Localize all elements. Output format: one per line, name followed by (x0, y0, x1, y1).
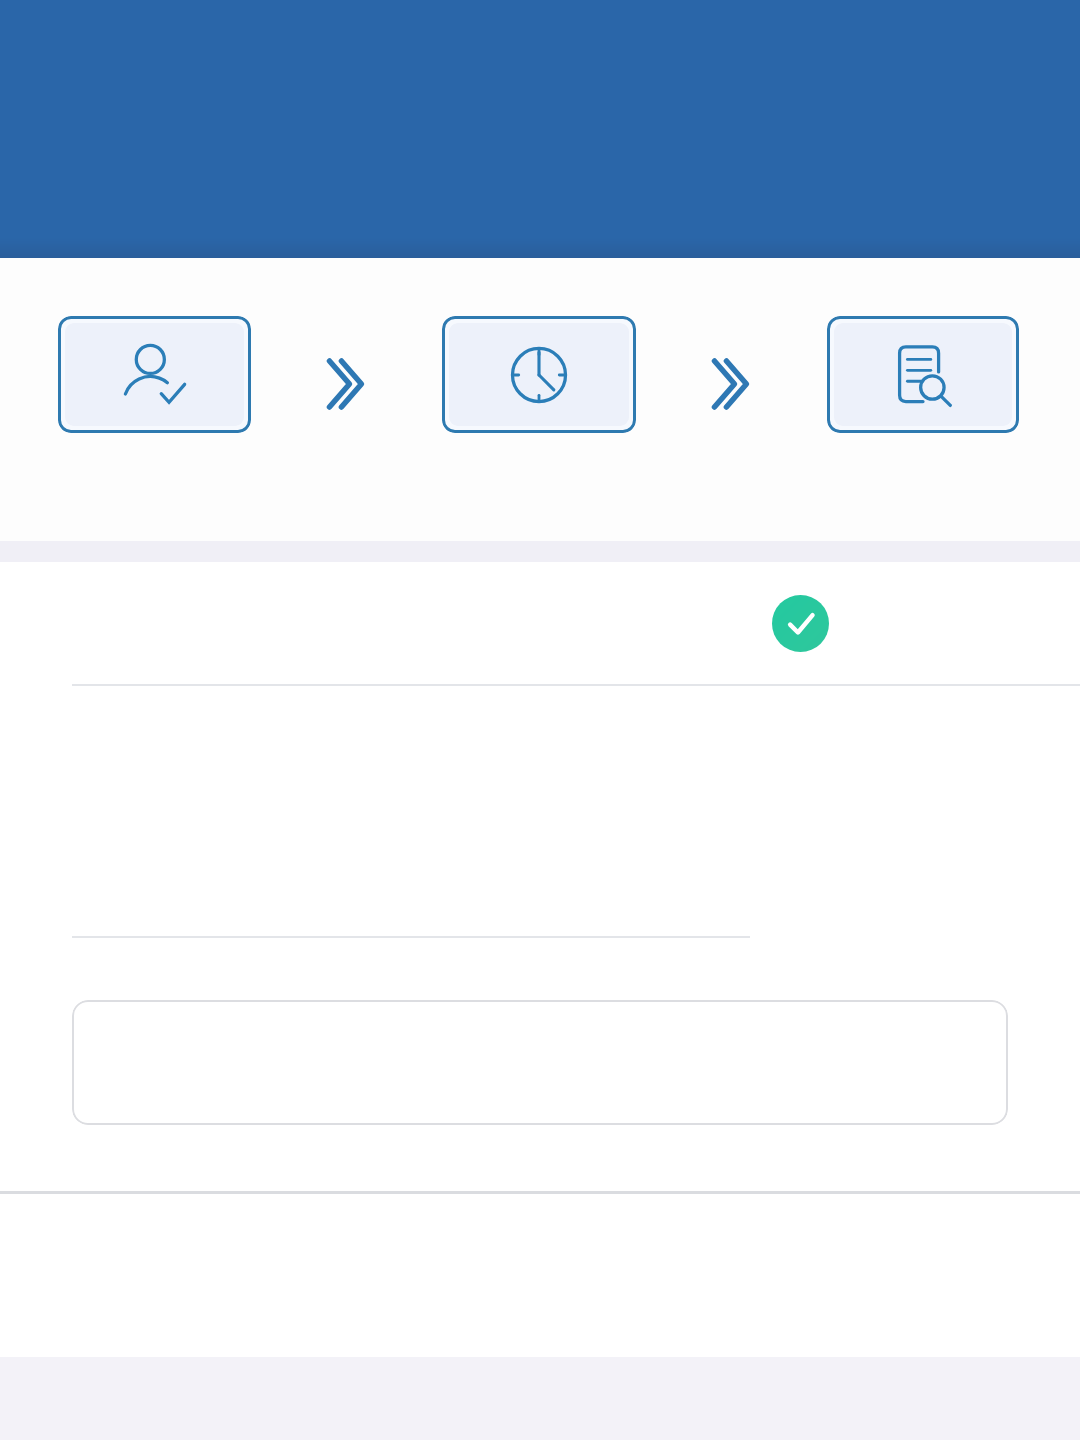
button[interactable]: Step 3: review document (834, 323, 1012, 426)
button[interactable]: Next step (322, 354, 368, 414)
button[interactable]: Step 2: schedule time (449, 323, 629, 426)
button[interactable]: Notes input field (72, 1000, 1008, 1125)
button[interactable]: Completed (772, 595, 829, 652)
button[interactable]: Step 1: identity verified (65, 323, 244, 426)
button[interactable]: Next step (707, 354, 753, 414)
